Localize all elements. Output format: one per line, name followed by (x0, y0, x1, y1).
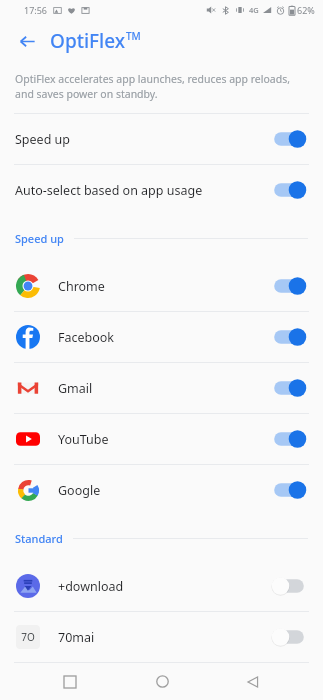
staticText: Standard (15, 531, 63, 546)
button[interactable]: Gmail (0, 363, 323, 413)
staticText: 4G (249, 5, 259, 15)
button[interactable]: Back (231, 663, 275, 700)
button[interactable]: On (270, 275, 308, 297)
staticText: OptiFlex accelerates app launches, reduc… (15, 72, 308, 101)
button[interactable]: Google (0, 465, 323, 515)
button[interactable]: Back (12, 26, 42, 56)
staticText: Speed up (15, 131, 270, 148)
button[interactable]: YouTube (0, 414, 323, 464)
button[interactable]: On (270, 428, 308, 450)
staticText: Chrome (58, 278, 270, 295)
button[interactable]: Recent apps (48, 663, 92, 700)
button[interactable]: On (270, 326, 308, 348)
button[interactable]: On (270, 377, 308, 399)
staticText: 62% (297, 4, 315, 16)
staticText: TM (126, 29, 141, 43)
button[interactable]: On (270, 128, 308, 150)
button[interactable]: +download (0, 561, 323, 611)
button[interactable]: Off (270, 575, 308, 597)
button[interactable]: 7O (0, 612, 323, 662)
button[interactable]: Auto-select based on app usage (0, 165, 323, 215)
staticText: Auto-select based on app usage (15, 182, 270, 199)
button[interactable]: Facebook (0, 312, 323, 362)
button[interactable]: Home (140, 663, 184, 700)
staticText: +download (58, 578, 270, 595)
staticText: OptiFlex (50, 28, 126, 54)
staticText: 17:56 (24, 4, 48, 16)
staticText: 70mai (58, 629, 270, 646)
staticText: Speed up (15, 231, 64, 246)
staticText: 7O (21, 630, 35, 644)
staticText: Google (58, 482, 270, 499)
button[interactable]: Off (270, 626, 308, 648)
staticText: Facebook (58, 329, 270, 346)
button[interactable]: Speed up (0, 114, 323, 164)
button[interactable]: On (270, 479, 308, 501)
staticText: YouTube (58, 431, 270, 448)
staticText: Gmail (58, 380, 270, 397)
button[interactable]: Chrome (0, 261, 323, 311)
button[interactable]: On (270, 179, 308, 201)
